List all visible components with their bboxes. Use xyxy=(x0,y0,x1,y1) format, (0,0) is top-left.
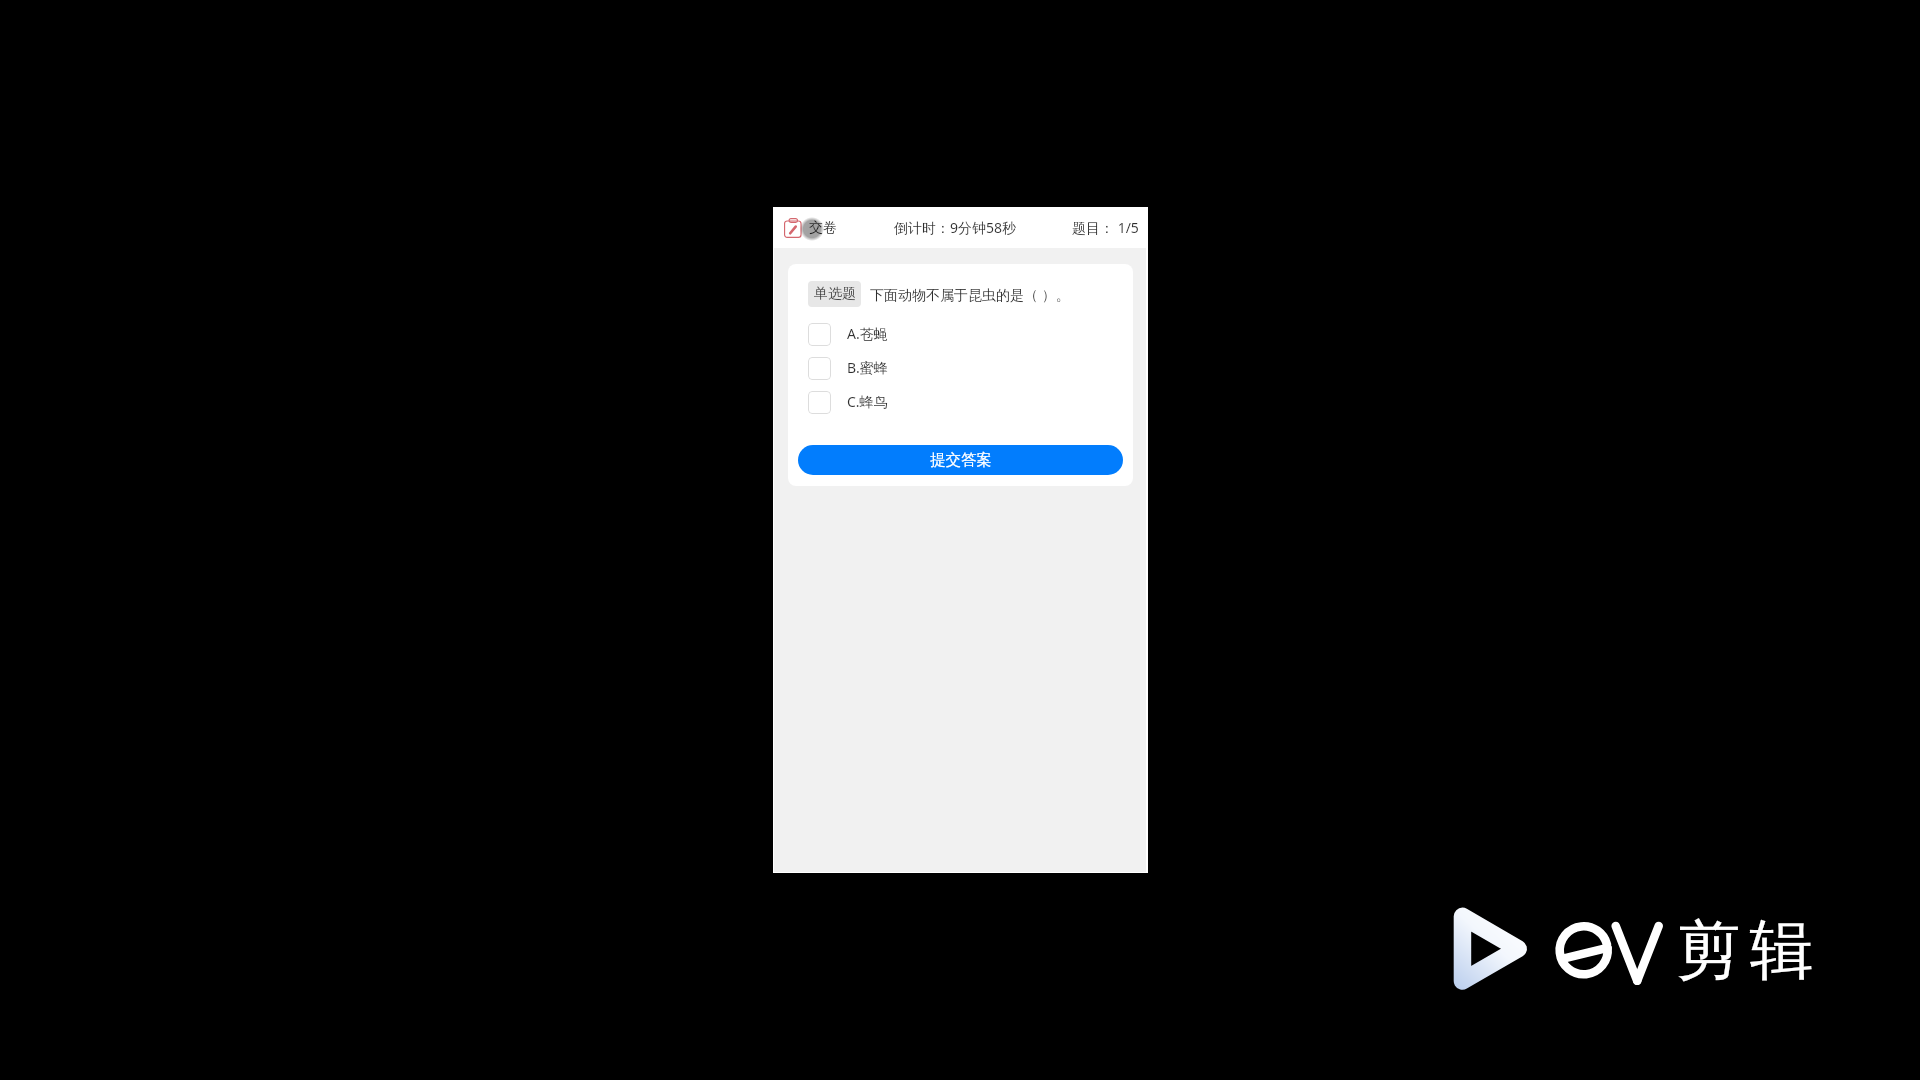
staticText: 下面动物不属于昆虫的是（ ）。 xyxy=(870,285,1070,304)
staticText: B.蜜蜂 xyxy=(847,358,888,377)
staticText: 交卷 xyxy=(809,219,837,237)
staticText: 倒计时：9分钟58秒 xyxy=(894,218,1017,237)
staticText: 提交答案 xyxy=(930,450,992,470)
button[interactable]: C.蜂鸟 xyxy=(788,385,1133,419)
button[interactable]: B.蜜蜂 xyxy=(788,351,1133,385)
staticText: 单选题 xyxy=(814,285,856,303)
button[interactable]: 提交答案 xyxy=(798,445,1123,475)
other: ev剪辑 watermark xyxy=(1445,899,1537,999)
staticText: A.苍蝇 xyxy=(847,324,888,343)
staticText: 剪辑 xyxy=(1672,910,1818,991)
staticText: C.蜂鸟 xyxy=(847,392,888,411)
other: 交卷 xyxy=(784,218,802,238)
button[interactable]: 交卷 xyxy=(784,207,837,248)
button[interactable]: A.苍蝇 xyxy=(788,317,1133,351)
staticText: 题目： 1/5 xyxy=(1072,218,1139,237)
